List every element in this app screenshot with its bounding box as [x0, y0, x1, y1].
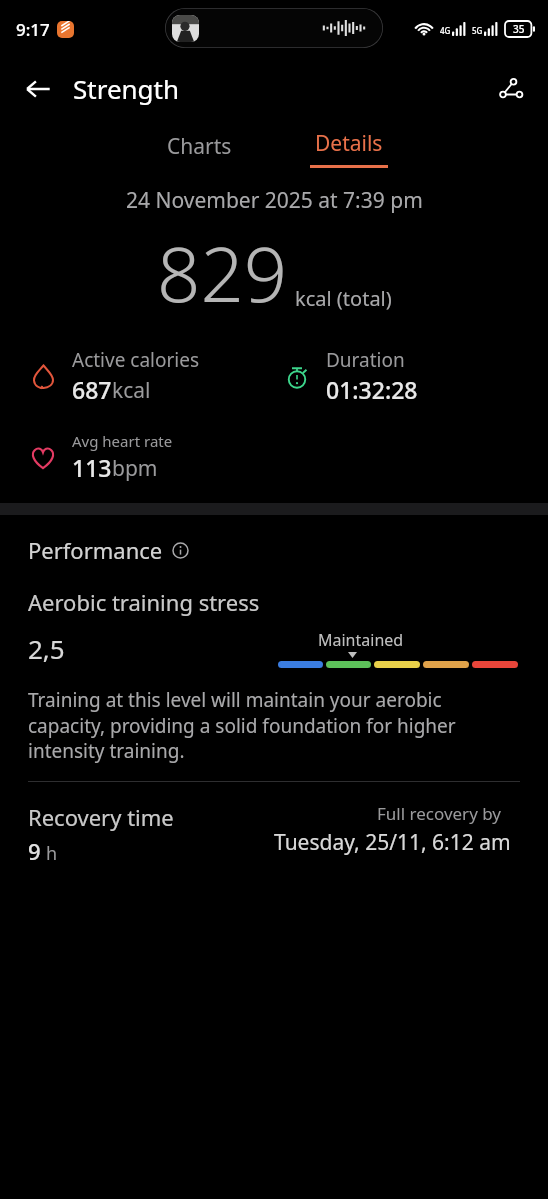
staticText: Details [315, 129, 383, 158]
staticText: Aerobic training stress [28, 587, 260, 617]
staticText: 687 [72, 374, 112, 405]
staticText: h [46, 841, 58, 866]
staticText: 9 [28, 836, 41, 866]
staticText: Active calories [72, 347, 200, 373]
staticText: Charts [167, 132, 232, 161]
staticText: 113 [72, 452, 112, 483]
staticText: 9:17 [16, 18, 50, 41]
button[interactable]: Avg heart rate [0, 431, 254, 483]
button[interactable]: Duration [254, 347, 508, 405]
staticText: Strength [73, 71, 180, 106]
staticText: 829 [157, 221, 288, 325]
staticText: kcal (total) [295, 285, 392, 312]
staticText: Training at this level will maintain you… [28, 687, 522, 763]
staticText: Performance [28, 535, 163, 565]
staticText: 2,5 [28, 631, 65, 666]
staticText: 24 November 2025 at 7:39 pm [126, 186, 423, 215]
staticText: 4G [440, 25, 451, 36]
staticText: Tuesday, 25/11, 6:12 am [274, 828, 511, 857]
button[interactable]: Back [14, 65, 62, 113]
staticText: bpm [112, 454, 158, 483]
staticText: Duration [326, 347, 405, 373]
button[interactable]: Active calories [0, 347, 254, 405]
staticText: Recovery time [28, 802, 174, 832]
staticText: 35 [513, 22, 525, 36]
staticText: Full recovery by [377, 802, 502, 825]
staticText: kcal [112, 376, 151, 405]
button[interactable]: Share [486, 65, 534, 113]
staticText: Maintained [318, 629, 404, 651]
button[interactable]: Performance [0, 533, 201, 567]
button[interactable]: Details [274, 120, 424, 172]
staticText: Avg heart rate [72, 431, 173, 451]
staticText: 5G [472, 25, 483, 36]
staticText: 01:32:28 [326, 374, 418, 405]
button[interactable]: Charts [124, 120, 274, 172]
